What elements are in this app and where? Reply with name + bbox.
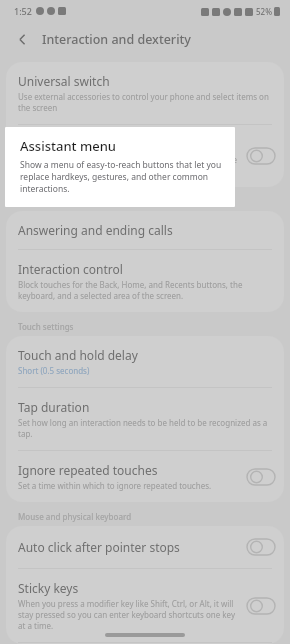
button[interactable]: Answering and ending calls (6, 211, 284, 249)
staticText: 52% (256, 6, 272, 17)
button[interactable]: Assistant menu (6, 125, 284, 187)
button[interactable]: Ignore repeated touches (6, 451, 284, 502)
staticText: When you press a modifier key like Shift… (18, 598, 238, 631)
staticText: Touch and hold delay (18, 347, 138, 363)
staticText: Use external accessories to control your… (18, 91, 276, 113)
staticText: Universal switch (18, 73, 110, 89)
button[interactable]: Touch and hold delay (6, 336, 284, 387)
staticText: Auto click after pointer stops (18, 539, 180, 555)
staticText: Answering and ending calls (18, 222, 173, 238)
staticText: Mouse and physical keyboard (18, 511, 132, 522)
staticText: Set how long an interaction needs to be … (18, 417, 276, 439)
staticText: Assistant menu (18, 136, 105, 152)
button[interactable]: Sticky keys (6, 569, 284, 642)
staticText: Sticky keys (18, 580, 79, 596)
button[interactable]: Toggle Assistant menu (246, 146, 276, 166)
button[interactable]: Toggle Sticky keys (246, 596, 276, 616)
button[interactable]: Toggle Ignore repeated touches (246, 467, 276, 487)
button[interactable]: Auto click after pointer stops (6, 526, 284, 568)
staticText: 1:52 (14, 5, 32, 17)
button[interactable]: Back (8, 25, 36, 53)
staticText: Show a menu of easy-to-reach buttons tha… (18, 154, 238, 176)
staticText: Show a menu of easy-to-reach buttons tha… (20, 159, 223, 195)
staticText: Interaction control (18, 261, 123, 277)
staticText: Block touches for the Back, Home, and Re… (18, 279, 276, 301)
staticText: Ignore repeated touches (18, 462, 158, 478)
button[interactable]: Toggle Auto click after pointer stops (246, 537, 276, 557)
staticText: Touch settings (18, 321, 74, 332)
staticText: Assistant menu (20, 137, 116, 155)
button[interactable]: Universal switch (6, 62, 284, 124)
staticText: Tap duration (18, 399, 90, 415)
staticText: Interaction and dexterity (42, 31, 191, 48)
button[interactable]: Interaction control (6, 250, 284, 312)
button[interactable]: Tap duration (6, 388, 284, 450)
staticText: Short (0.5 seconds) (18, 365, 90, 376)
button[interactable]: Assistant menu (5, 127, 235, 207)
staticText: Set a time within which to ignore repeat… (18, 480, 212, 491)
